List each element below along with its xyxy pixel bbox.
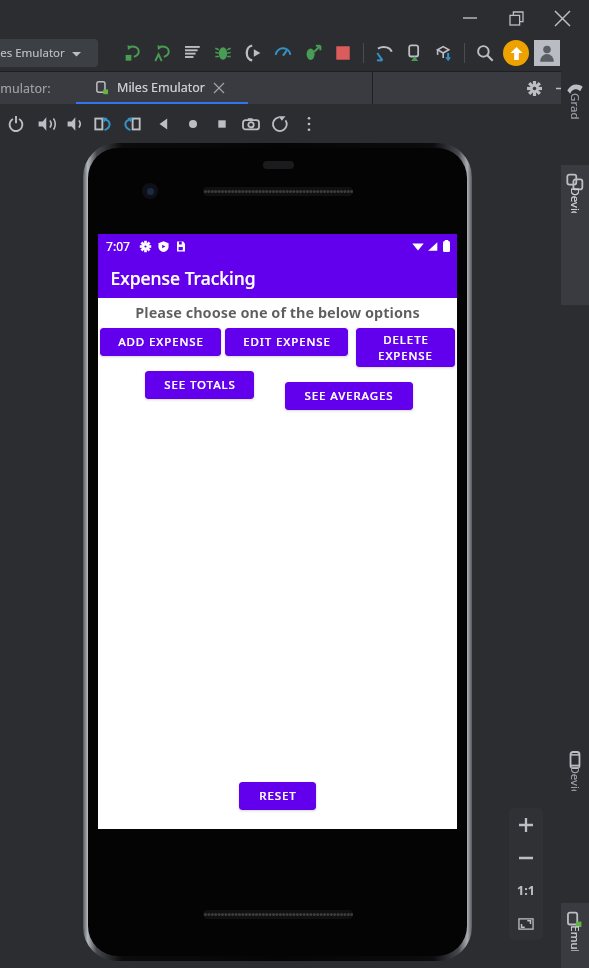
button[interactable]: Search bbox=[470, 38, 500, 68]
button[interactable]: Screenshot bbox=[236, 108, 265, 140]
button[interactable]: Run bbox=[118, 38, 148, 68]
staticText: Device Manager bbox=[567, 187, 583, 213]
staticText: Device File Explorer bbox=[567, 765, 583, 791]
button[interactable]: Power bbox=[1, 108, 30, 140]
button[interactable]: Gradle sync bbox=[429, 38, 459, 68]
staticText: ADD EXPENSE bbox=[118, 334, 204, 350]
button[interactable]: Miles Emulator bbox=[76, 71, 248, 104]
staticText: RESET bbox=[259, 788, 297, 804]
button[interactable]: Volume down bbox=[59, 108, 88, 140]
button[interactable]: Gradle bbox=[561, 71, 589, 161]
button[interactable]: Debug with profiler bbox=[298, 38, 328, 68]
button[interactable]: Zoom in bbox=[509, 808, 543, 841]
button[interactable]: Home bbox=[178, 108, 207, 140]
button[interactable]: EDIT EXPENSE bbox=[225, 328, 348, 356]
staticText: SEE AVERAGES bbox=[304, 388, 394, 404]
button[interactable]: Update available bbox=[503, 40, 529, 66]
button[interactable]: Emulator bbox=[561, 903, 589, 968]
staticText: Emulator: bbox=[0, 80, 51, 97]
button[interactable]: Volume up bbox=[30, 108, 59, 140]
button[interactable]: Account bbox=[534, 40, 560, 66]
button[interactable]: SEE TOTALS bbox=[145, 371, 254, 399]
staticText: EXPENSE bbox=[378, 348, 433, 364]
button[interactable]: ADD EXPENSE bbox=[100, 328, 221, 356]
button[interactable]: Device manager bbox=[399, 38, 429, 68]
button[interactable]: Fit to screen bbox=[509, 907, 543, 940]
button[interactable]: Zoom out bbox=[509, 841, 543, 874]
button[interactable]: Run with config bbox=[148, 38, 178, 68]
button[interactable]: Apply changes bbox=[178, 38, 208, 68]
button[interactable]: Back bbox=[149, 108, 178, 140]
button[interactable]: Actual size bbox=[509, 874, 543, 907]
button[interactable]: More bbox=[294, 108, 323, 140]
button[interactable]: Close bbox=[539, 2, 585, 34]
staticText: Expense Tracking bbox=[110, 266, 256, 290]
button[interactable]: es Emulator bbox=[0, 39, 98, 67]
staticText: 1:1 bbox=[517, 882, 535, 899]
button[interactable]: Device File Explorer bbox=[561, 743, 589, 901]
button[interactable]: Rotate left bbox=[88, 108, 117, 140]
button[interactable]: Restore bbox=[493, 2, 539, 34]
staticText: Miles Emulator bbox=[117, 79, 205, 96]
staticText: es Emulator bbox=[0, 45, 65, 61]
button[interactable]: Stop bbox=[328, 38, 358, 68]
button[interactable]: Run to cursor bbox=[238, 38, 268, 68]
button[interactable]: Hide tool window bbox=[549, 75, 575, 101]
button[interactable]: Device Manager bbox=[561, 165, 589, 305]
button[interactable]: Debug bbox=[208, 38, 238, 68]
staticText: Please choose one of the below options bbox=[135, 302, 420, 322]
staticText: Emulator bbox=[567, 925, 583, 951]
staticText: DELETE bbox=[383, 332, 429, 348]
button[interactable]: Settings bbox=[521, 75, 547, 101]
button[interactable]: SEE AVERAGES bbox=[285, 382, 413, 410]
button[interactable]: Profiler bbox=[268, 38, 298, 68]
button[interactable]: Rotate right bbox=[117, 108, 146, 140]
button[interactable]: Minimize bbox=[447, 2, 493, 34]
staticText: 7:07 bbox=[106, 238, 130, 254]
staticText: SEE TOTALS bbox=[164, 377, 236, 393]
button[interactable]: Logcat bbox=[369, 38, 399, 68]
button[interactable]: Overview bbox=[207, 108, 236, 140]
button[interactable]: RESET bbox=[239, 782, 316, 810]
staticText: Gradle bbox=[567, 93, 583, 119]
button[interactable]: Record bbox=[265, 108, 294, 140]
button[interactable]: DELETE bbox=[356, 328, 455, 367]
staticText: EDIT EXPENSE bbox=[243, 334, 331, 350]
